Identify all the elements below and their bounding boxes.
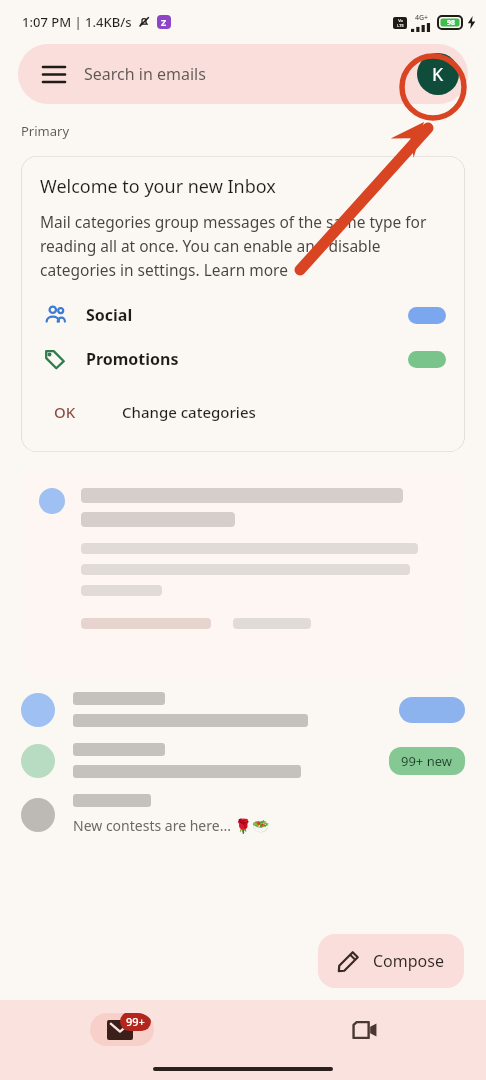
button[interactable] [21,470,465,678]
staticText: 99+ new [401,752,453,770]
staticText: 1:07 PM | 1.4KB/s [22,13,132,31]
staticText: 4G+ [415,13,429,23]
staticText: New contests are here... 🌹🥗 [73,816,270,835]
button[interactable]: Change categories [112,394,266,430]
button[interactable]: OK [40,394,90,430]
staticText: Promotions [86,348,179,370]
staticText: Mail categories group messages of the sa… [40,211,446,280]
staticText: Primary [21,122,70,140]
button[interactable]: 99+ new [21,743,465,778]
button[interactable]: Meet [333,1013,397,1046]
button[interactable]: Mail [90,1013,154,1046]
button[interactable] [21,692,465,727]
button[interactable]: Open navigation menu [18,44,468,104]
staticText: 98 [447,18,456,28]
staticText: K [432,62,444,87]
staticText: 99+ [126,1014,145,1029]
staticText: Change categories [122,402,256,422]
button[interactable]: Social [40,300,446,330]
staticText: Compose [373,950,444,972]
staticText: Search in emails [84,63,206,85]
button[interactable]: New contests are here... 🌹🥗 [21,794,465,835]
staticText: Z [161,16,167,28]
staticText: Vo LTE [397,18,404,28]
staticText: Social [86,304,133,326]
button[interactable]: Compose [318,934,464,988]
button[interactable]: Promotions [40,344,446,374]
button[interactable]: Open navigation menu [36,56,72,92]
staticText: OK [54,402,76,422]
button[interactable]: Social toggle [408,307,446,324]
button[interactable]: Account profile [417,53,459,95]
button[interactable]: Promotions toggle [408,351,446,368]
staticText: Welcome to your new Inbox [40,174,276,199]
